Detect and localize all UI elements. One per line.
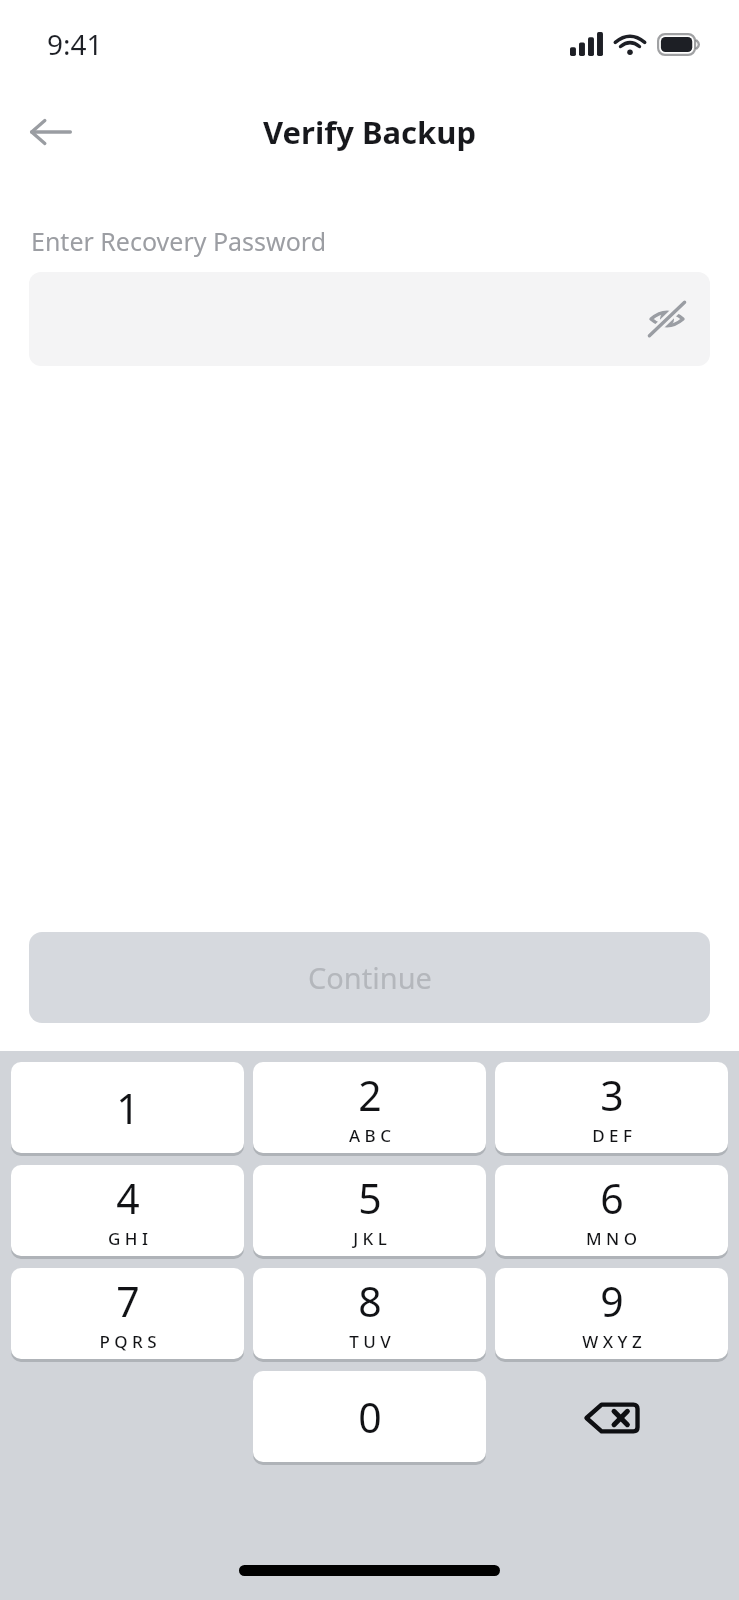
staticText: 9:41 <box>47 25 103 63</box>
staticText: 8 <box>358 1273 382 1329</box>
staticText: Enter Recovery Password <box>31 224 327 258</box>
staticText: P Q R S <box>99 1330 157 1353</box>
staticText: 7 <box>116 1273 140 1329</box>
staticText: J K L <box>353 1227 387 1250</box>
staticText: 3 <box>600 1067 624 1123</box>
button[interactable]: 6 <box>495 1165 728 1256</box>
button[interactable]: 3 <box>495 1062 728 1153</box>
staticText: 4 <box>116 1170 140 1226</box>
staticText: D E F <box>592 1124 632 1147</box>
button[interactable]: 9 <box>495 1268 728 1359</box>
staticText: 1 <box>116 1080 140 1136</box>
staticText: 5 <box>358 1170 382 1226</box>
button[interactable]: 0 <box>253 1371 486 1462</box>
button[interactable]: 7 <box>11 1268 244 1359</box>
staticText: A B C <box>349 1124 391 1147</box>
staticText: Verify Backup <box>263 111 477 153</box>
staticText: 2 <box>358 1067 382 1123</box>
staticText: W X Y Z <box>582 1330 642 1353</box>
button[interactable]: 4 <box>11 1165 244 1256</box>
button[interactable]: 8 <box>253 1268 486 1359</box>
button[interactable]: 5 <box>253 1165 486 1256</box>
button[interactable]: 1 <box>11 1062 244 1153</box>
staticText: T U V <box>349 1330 391 1353</box>
button[interactable]: Show password <box>29 272 710 366</box>
staticText: 9 <box>600 1273 624 1329</box>
staticText: Continue <box>308 958 432 997</box>
button[interactable]: Show password <box>636 288 698 350</box>
button[interactable]: Continue <box>29 932 710 1023</box>
staticText: M N O <box>586 1227 637 1250</box>
staticText: G H I <box>108 1227 148 1250</box>
staticText: 6 <box>600 1170 624 1226</box>
button[interactable]: 2 <box>253 1062 486 1153</box>
button[interactable]: Delete <box>495 1371 728 1465</box>
staticText: 0 <box>358 1389 382 1445</box>
button[interactable]: Back <box>20 101 82 163</box>
